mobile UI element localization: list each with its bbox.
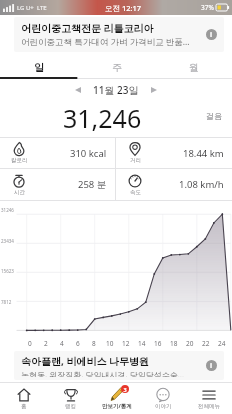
staticText: 거리 (130, 157, 141, 164)
staticText: i (210, 361, 213, 371)
staticText: 12 (122, 339, 130, 348)
staticText: 24 (218, 339, 226, 348)
button[interactable]: 일 (0, 55, 78, 79)
staticText: 11월 23일 (93, 83, 139, 97)
staticText: 4 (60, 339, 64, 348)
staticText: 14 (138, 339, 146, 348)
staticText: 7812 (1, 299, 12, 305)
staticText: 6 (76, 339, 80, 348)
button[interactable]: 랭킹 (47, 383, 94, 414)
staticText: 월 (189, 61, 199, 74)
button[interactable]: 월 (155, 55, 232, 79)
staticText: 칼로리 (11, 157, 28, 164)
staticText: 10 (106, 339, 114, 348)
staticText: 15623 (1, 268, 14, 274)
staticText: 주 (112, 61, 122, 74)
button[interactable]: 다음 날짜 (145, 81, 163, 99)
staticText: 오전 12:17 (105, 3, 142, 13)
staticText: 어린이중고책 특가대여 가벼 가격비교 반품… (21, 36, 190, 48)
staticText: i (210, 30, 213, 40)
staticText: 어린이중고책전문 리틀코리아 (21, 21, 154, 35)
staticText: 2 (44, 339, 48, 348)
button[interactable]: 홈 (0, 383, 47, 414)
staticText: 0 (28, 339, 32, 348)
staticText: 만보기/통계 (102, 402, 132, 410)
staticText: 23434 (1, 238, 14, 244)
staticText: 걸음 (206, 111, 222, 121)
staticText: 이야기 (155, 403, 172, 410)
staticText: 1.08 km/h (179, 178, 224, 191)
staticText: 258 분 (78, 178, 107, 191)
staticText: 18.44 km (183, 147, 224, 160)
staticText: 16 (154, 339, 162, 348)
button[interactable]: 시간 (0, 169, 115, 200)
staticText: 3 (123, 386, 127, 393)
staticText: 일 (34, 61, 44, 74)
staticText: 시간 (14, 189, 25, 196)
staticText: 22 (202, 339, 210, 348)
button[interactable]: 칼로리 (0, 138, 115, 168)
staticText: 37% (201, 3, 214, 12)
button[interactable]: 3 (94, 383, 140, 414)
staticText: LG U+ LTE (17, 4, 47, 12)
staticText: 310 kcal (70, 147, 107, 160)
staticText: 속아플랜, 비에비스 나무병원 (21, 354, 150, 368)
button[interactable]: 이야기 (140, 383, 186, 414)
staticText: 랭킹 (65, 403, 76, 410)
button[interactable]: 광고 정보 (206, 360, 217, 371)
button[interactable]: 어린이중고책전문 리틀코리아 (14, 17, 224, 52)
button[interactable]: 전체메뉴 (186, 383, 232, 414)
button[interactable]: 거리 (116, 138, 232, 168)
staticText: 속도 (130, 189, 141, 196)
button[interactable]: 광고 정보 (206, 29, 217, 40)
staticText: 논현동, 위장질환, 당일내시경, 당일담석수술… (21, 369, 184, 377)
button[interactable]: 속아플랜, 비에비스 나무병원 (14, 351, 224, 380)
button[interactable]: 이전 날짜 (69, 81, 87, 99)
staticText: 20 (186, 339, 194, 348)
staticText: 8 (92, 339, 96, 348)
button[interactable]: 속도 (116, 169, 232, 200)
staticText: 전체메뉴 (198, 403, 220, 410)
staticText: 18 (170, 339, 178, 348)
staticText: 31,246 (63, 101, 142, 131)
button[interactable]: 주 (78, 55, 155, 79)
staticText: 홈 (21, 403, 27, 410)
staticText: 31246 (1, 207, 14, 213)
